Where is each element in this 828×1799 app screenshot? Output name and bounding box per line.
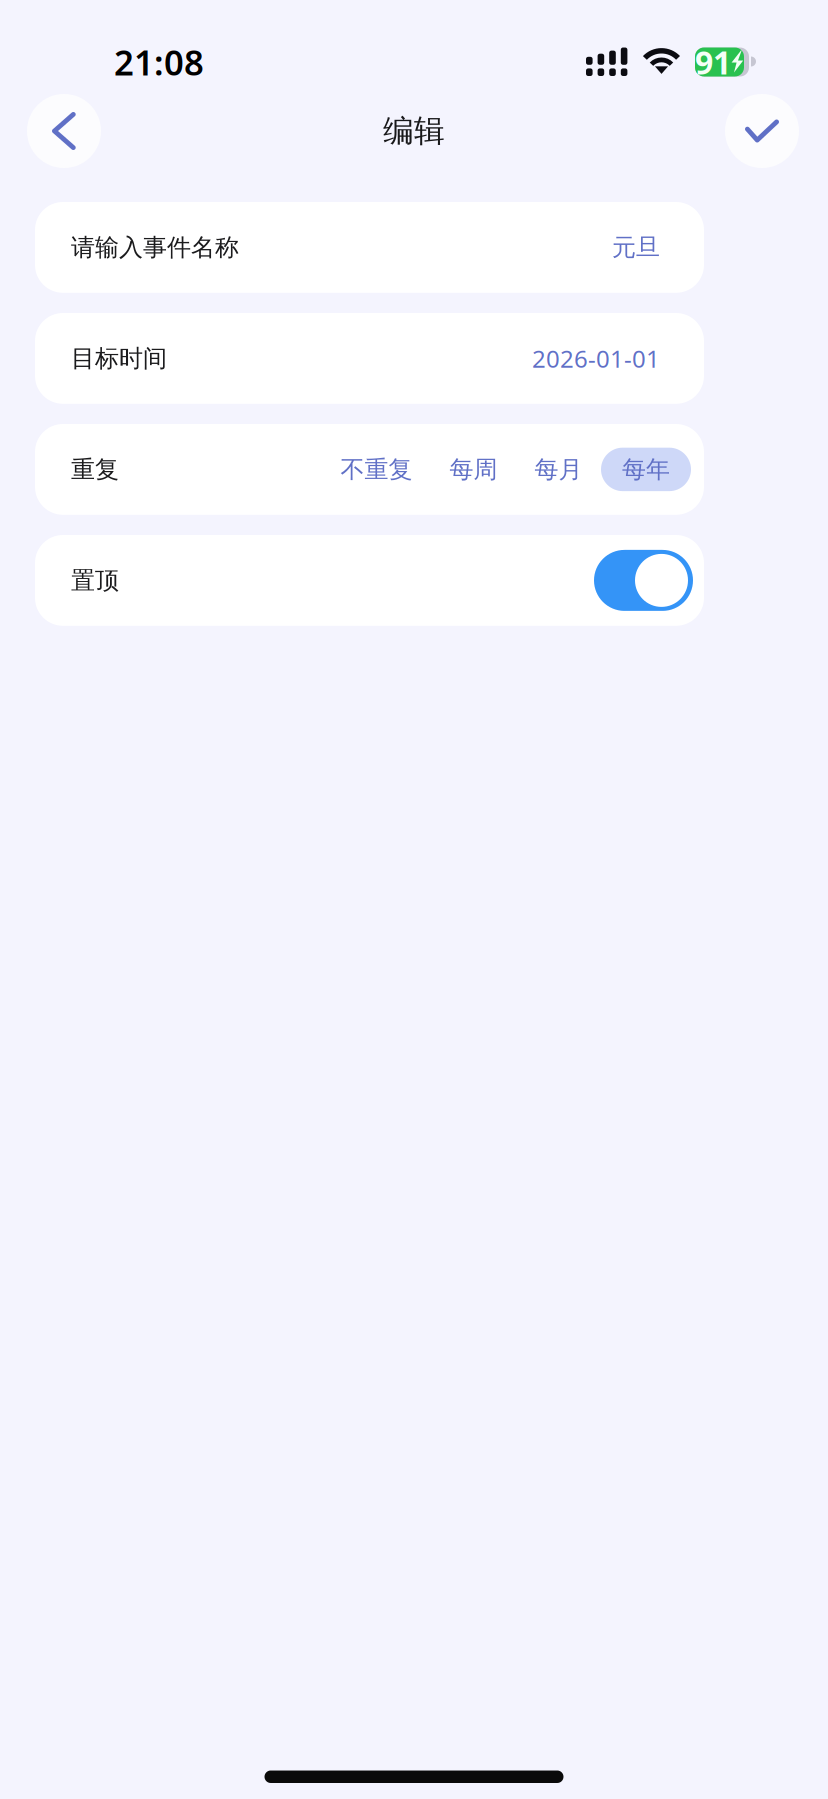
staticText: 元旦: [612, 233, 660, 262]
staticText: 每月: [534, 455, 582, 484]
button[interactable]: Back: [27, 94, 101, 168]
button[interactable]: 每月: [516, 448, 601, 491]
staticText: 编辑: [383, 112, 445, 150]
staticText: 目标时间: [71, 344, 167, 373]
staticText: 置顶: [71, 566, 119, 595]
staticText: 21:08: [114, 39, 204, 85]
staticText: 不重复: [340, 455, 412, 484]
staticText: 重复: [71, 455, 119, 484]
button[interactable]: 每周: [431, 448, 516, 491]
button[interactable]: 请输入事件名称: [35, 202, 704, 293]
button[interactable]: 目标时间: [35, 313, 704, 404]
button[interactable]: 置顶: [594, 550, 693, 611]
staticText: 91: [695, 41, 731, 83]
button[interactable]: Save: [725, 94, 799, 168]
staticText: 每年: [622, 455, 670, 484]
staticText: 请输入事件名称: [71, 233, 239, 262]
staticText: 2026-01-01: [532, 342, 660, 374]
button[interactable]: 每年: [601, 448, 691, 491]
button[interactable]: 不重复: [322, 448, 431, 491]
staticText: 每周: [449, 455, 497, 484]
